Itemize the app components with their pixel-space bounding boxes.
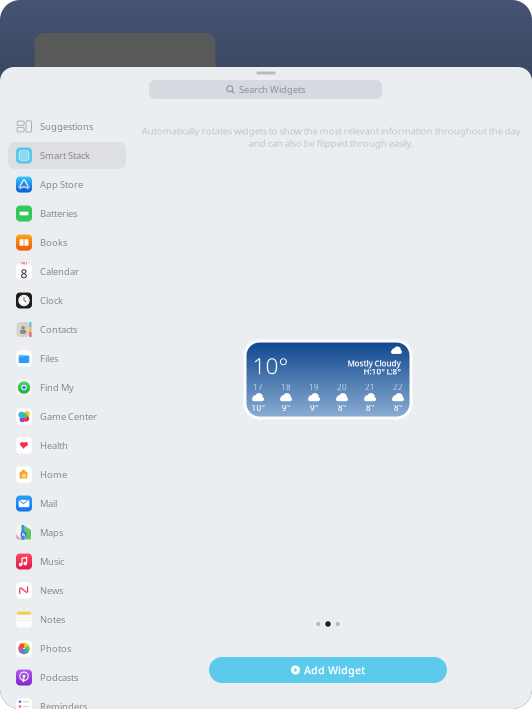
staticText: 8° — [338, 403, 346, 413]
staticText: Maps — [40, 526, 63, 539]
staticText: 18 — [281, 382, 291, 392]
button[interactable]: Find My — [8, 374, 126, 401]
button[interactable]: Home — [8, 461, 126, 488]
button[interactable]: Books — [8, 229, 126, 256]
staticText: 19 — [309, 382, 319, 392]
staticText: Batteries — [40, 207, 77, 220]
staticText: News — [40, 584, 63, 597]
staticText: Podcasts — [40, 671, 78, 684]
staticText: Mail — [40, 497, 57, 510]
staticText: Photos — [40, 642, 71, 655]
staticText: Find My — [40, 381, 74, 394]
staticText: 10° — [252, 350, 288, 380]
staticText: A — [21, 531, 25, 538]
staticText: Game Center — [40, 410, 97, 423]
staticText: Add Widget — [304, 663, 365, 677]
button[interactable]: App Store — [8, 171, 126, 198]
staticText: App Store — [40, 178, 83, 191]
staticText: 9° — [310, 403, 318, 413]
staticText: Files — [40, 352, 58, 365]
staticText: Calendar — [40, 265, 79, 278]
staticText: 9° — [282, 403, 290, 413]
button[interactable]: Game Center — [8, 403, 126, 430]
staticText: Automatically rotates widgets to show th… — [141, 125, 520, 149]
button[interactable]: Contacts — [8, 316, 126, 343]
button[interactable]: Clock — [8, 287, 126, 314]
staticText: 8° — [366, 403, 374, 413]
button[interactable]: Search Widgets — [149, 80, 382, 99]
staticText: 8 — [20, 266, 27, 282]
button[interactable]: Batteries — [8, 200, 126, 227]
staticText: Music — [40, 555, 64, 568]
button[interactable]: News — [8, 577, 126, 604]
button[interactable]: Photos — [8, 635, 126, 662]
staticText: 10° — [251, 403, 264, 413]
staticText: 22 — [393, 382, 403, 392]
staticText: Reminders — [40, 700, 87, 709]
staticText: Home — [40, 468, 67, 481]
staticText: Smart Stack — [40, 149, 90, 162]
button[interactable]: Music — [8, 548, 126, 575]
staticText: 21 — [365, 382, 375, 392]
staticText: Health — [40, 439, 68, 452]
button[interactable]: Add Widget — [209, 657, 447, 683]
button[interactable]: Podcasts — [8, 664, 126, 691]
staticText: Books — [40, 236, 67, 249]
staticText: 17 — [253, 382, 263, 392]
button[interactable]: A — [8, 519, 126, 546]
staticText: H:10° L:8° — [363, 366, 400, 377]
staticText: Contacts — [40, 323, 77, 336]
button[interactable]: Mail — [8, 490, 126, 517]
staticText: 8° — [394, 403, 402, 413]
button[interactable]: Notes — [8, 606, 126, 633]
staticText: Notes — [40, 613, 65, 626]
button[interactable]: Suggestions — [8, 113, 126, 140]
button[interactable]: Health — [8, 432, 126, 459]
staticText: 20 — [337, 382, 347, 392]
button[interactable]: FRI — [8, 258, 126, 285]
staticText: FRI — [20, 260, 27, 266]
staticText: Clock — [40, 294, 63, 307]
button[interactable]: Files — [8, 345, 126, 372]
staticText: Suggestions — [40, 120, 93, 133]
staticText: Mostly Cloudy — [347, 358, 400, 369]
button[interactable]: Reminders — [8, 693, 126, 709]
button[interactable]: Smart Stack — [8, 142, 126, 169]
staticText: Search Widgets — [239, 83, 305, 96]
